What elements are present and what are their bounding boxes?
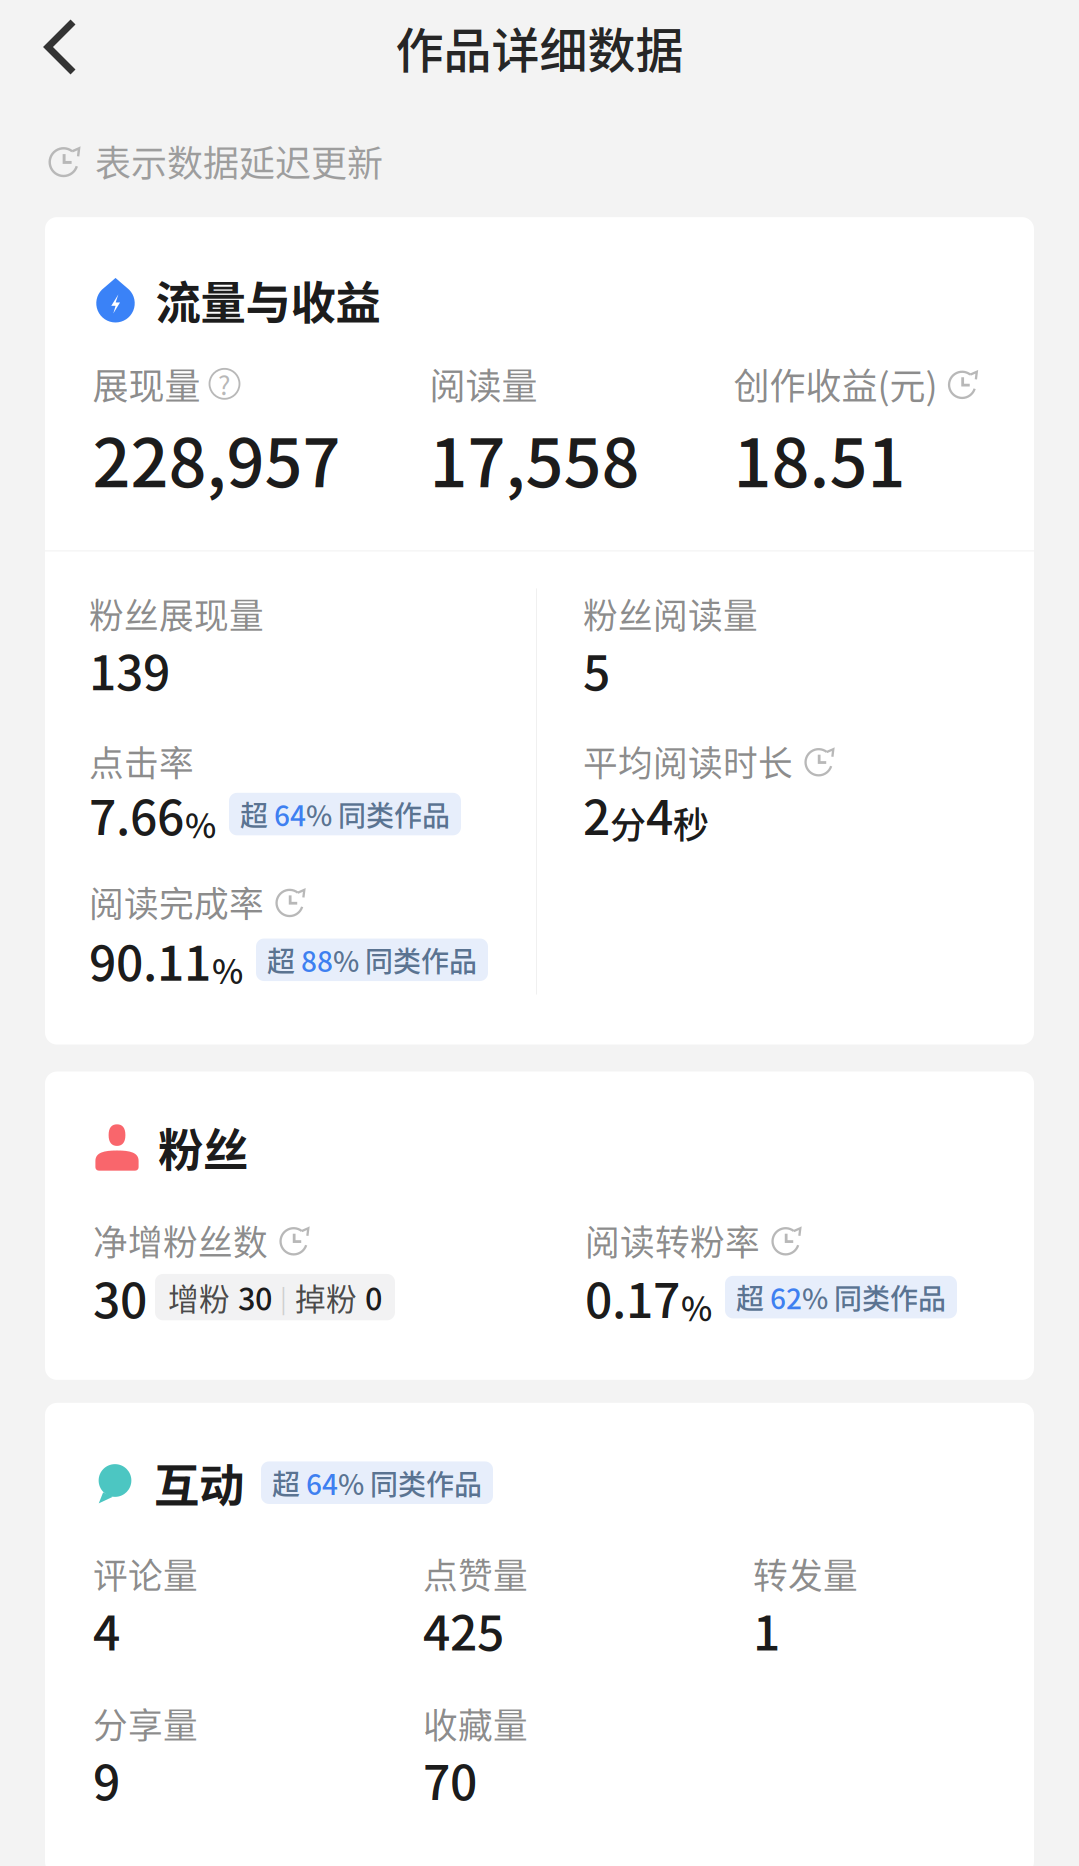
- staticText: 转发量: [753, 1548, 858, 1599]
- staticText: 增粉: [168, 1275, 230, 1319]
- staticText: 超: [267, 939, 301, 980]
- staticText: 掉粉: [295, 1275, 357, 1319]
- staticText: 9: [93, 1744, 120, 1814]
- staticText: 228,957: [92, 410, 340, 506]
- staticText: 创作收益(元): [733, 358, 937, 410]
- staticText: % 同类作品: [338, 1462, 482, 1503]
- staticText: 4: [93, 1595, 120, 1664]
- staticText: 超: [240, 794, 274, 834]
- staticText: 18.51: [733, 410, 905, 506]
- staticText: %: [185, 800, 216, 848]
- staticText: 收藏量: [423, 1698, 528, 1748]
- staticText: 64: [274, 794, 306, 834]
- staticText: 88: [301, 939, 333, 980]
- staticText: 展现量: [92, 358, 200, 410]
- staticText: 1: [753, 1595, 780, 1664]
- staticText: % 同类作品: [333, 939, 477, 980]
- staticText: 90.11: [89, 925, 211, 994]
- staticText: 互动: [154, 1450, 244, 1515]
- staticText: 4: [646, 779, 673, 849]
- staticText: 70: [423, 1744, 477, 1814]
- staticText: % 同类作品: [802, 1277, 946, 1317]
- staticText: 分: [610, 797, 646, 849]
- staticText: 5: [583, 635, 610, 704]
- staticText: %: [212, 945, 243, 994]
- staticText: 评论量: [93, 1548, 198, 1599]
- staticText: 64: [306, 1462, 338, 1503]
- staticText: 2: [583, 779, 610, 849]
- staticText: 作品详细数据: [395, 12, 683, 82]
- staticText: 流量与收益: [155, 267, 380, 333]
- staticText: 粉丝展现量: [89, 588, 264, 639]
- staticText: 点赞量: [423, 1548, 528, 1599]
- staticText: 17,558: [429, 410, 639, 506]
- button[interactable]: Back: [0, 2, 105, 92]
- staticText: 平均阅读时长: [583, 736, 793, 786]
- staticText: 139: [89, 635, 170, 704]
- staticText: % 同类作品: [306, 794, 450, 834]
- staticText: 秒: [673, 797, 709, 849]
- staticText: 阅读量: [429, 358, 537, 410]
- staticText: 0: [365, 1275, 382, 1319]
- staticText: 阅读完成率: [89, 877, 264, 927]
- staticText: 点击率: [89, 736, 194, 786]
- staticText: 30: [238, 1275, 272, 1319]
- staticText: ?: [218, 365, 231, 403]
- staticText: 超: [736, 1277, 770, 1317]
- staticText: 表示数据延迟更新: [95, 135, 383, 187]
- staticText: |: [280, 1279, 287, 1315]
- staticText: 粉丝: [158, 1114, 248, 1180]
- staticText: 0.17: [585, 1262, 680, 1332]
- staticText: 7.66: [89, 779, 184, 849]
- staticText: 粉丝阅读量: [583, 588, 758, 639]
- staticText: 阅读转粉率: [585, 1215, 760, 1265]
- staticText: 超: [272, 1462, 306, 1503]
- staticText: 净增粉丝数: [93, 1215, 268, 1265]
- staticText: %: [681, 1283, 712, 1331]
- staticText: 425: [423, 1595, 504, 1664]
- staticText: 30: [93, 1262, 147, 1332]
- staticText: 分享量: [93, 1698, 198, 1748]
- staticText: 62: [770, 1277, 802, 1317]
